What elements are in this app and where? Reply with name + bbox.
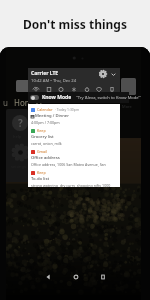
staticText: Know Mode	[42, 94, 72, 101]
button[interactable]: Back	[40, 269, 55, 284]
staticText: Office address, 1006 San Mateo Avenue, S…	[31, 162, 117, 167]
button[interactable]: Quick setting 4	[69, 87, 79, 92]
button[interactable]: Quick setting 3	[56, 87, 66, 92]
staticText: strong watering, dry curry, shopping nif…	[31, 183, 111, 187]
button[interactable]: Recent apps	[95, 269, 110, 284]
staticText: 10:42 AM • Thu, Dec 24	[31, 78, 77, 84]
staticText: Don't miss things	[23, 16, 127, 32]
button[interactable]: Quick setting 7	[107, 87, 117, 92]
button[interactable]: Quick setting 1	[31, 87, 41, 92]
button[interactable]: Quick setting 5	[82, 87, 92, 92]
staticText: Meeting / Dinner	[35, 113, 70, 119]
button[interactable]: Recent app card	[6, 109, 28, 182]
staticText: carrot, onion, milk	[31, 141, 62, 146]
button[interactable]: Recent app left	[16, 80, 30, 92]
staticText: Keep	[37, 170, 46, 175]
button[interactable]: Keep	[28, 125, 120, 146]
staticText: Gmail	[37, 149, 48, 154]
staticText: "Try ‘Alexa, switch to Know Mode’"	[76, 95, 142, 101]
staticText: Grocery list	[31, 134, 54, 140]
staticText: u	[3, 97, 8, 107]
staticText: 4:00pm / 7:00pm	[31, 120, 60, 125]
button[interactable]: Keep	[28, 167, 120, 187]
button[interactable]: Recent app right	[121, 78, 136, 95]
button[interactable]: Home	[68, 269, 83, 284]
button[interactable]: Settings	[99, 70, 107, 78]
button[interactable]: Expand shade	[109, 70, 117, 78]
staticText: ?	[18, 116, 23, 130]
staticText: Keep	[37, 128, 46, 133]
staticText: Hon	[14, 97, 30, 107]
staticText: More	[122, 104, 132, 109]
button[interactable]: Quick setting 6	[94, 87, 104, 92]
button[interactable]: Quick setting 2	[44, 87, 54, 92]
staticText: · Today 1:30pm	[55, 107, 80, 112]
button[interactable]: Know Mode	[30, 92, 142, 103]
staticText: Calendar	[37, 107, 53, 112]
button[interactable]: Gmail	[28, 146, 120, 167]
button[interactable]: Calendar	[28, 104, 120, 125]
staticText: G	[36, 97, 42, 107]
staticText: To-do list	[31, 176, 50, 182]
staticText: Office address	[31, 155, 60, 161]
staticText: Carrier LTE	[31, 70, 59, 77]
